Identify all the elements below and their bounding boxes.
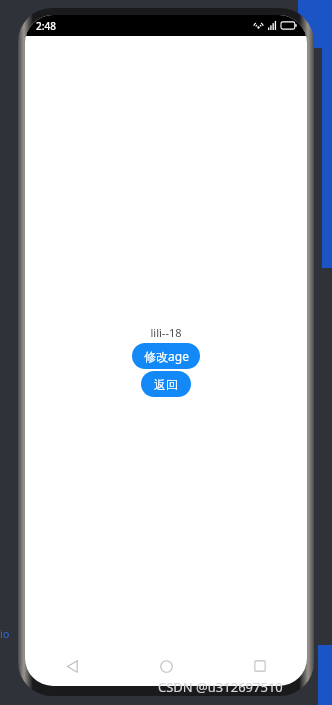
- button[interactable]: 修改age: [132, 343, 200, 369]
- staticText: 返回: [154, 377, 178, 392]
- button[interactable]: Recent apps: [213, 646, 307, 686]
- staticText: 修改age: [144, 348, 189, 364]
- button[interactable]: Back: [25, 646, 119, 686]
- button[interactable]: 返回: [141, 371, 191, 397]
- staticText: io: [0, 626, 10, 640]
- staticText: 2:48: [36, 19, 56, 33]
- staticText: lili--18: [150, 325, 182, 340]
- button[interactable]: Home: [119, 646, 213, 686]
- staticText: CSDN @u312697510: [158, 678, 283, 696]
